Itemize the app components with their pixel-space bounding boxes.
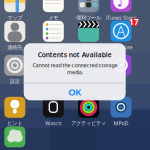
- button[interactable]: 連絡先: [0, 21, 30, 51]
- staticText: アクティビティ: [71, 120, 106, 127]
- button[interactable]: 設定: [0, 55, 30, 85]
- button[interactable]: App Store: [106, 21, 136, 51]
- button[interactable]: メモ: [38, 0, 68, 21]
- button[interactable]: OK: [24, 83, 126, 100]
- staticText: Contents not Available: [38, 50, 112, 59]
- staticText: マップ: [7, 14, 22, 21]
- staticText: App Store: [109, 44, 132, 51]
- button[interactable]: App: [106, 55, 136, 85]
- staticText: メモ: [48, 14, 58, 21]
- staticText: 便利ツール: [76, 14, 101, 21]
- staticText: 17: [129, 17, 139, 27]
- button[interactable]: iTunes Store: [106, 0, 136, 21]
- button[interactable]: ヒント: [0, 97, 30, 127]
- button[interactable]: Watch: [38, 97, 68, 127]
- button[interactable]: アクティビティ: [71, 97, 106, 127]
- button[interactable]: MPoD: [106, 97, 136, 127]
- staticText: ♪: [116, 0, 125, 10]
- staticText: OK: [68, 86, 81, 98]
- button[interactable]: マップ: [0, 0, 30, 21]
- staticText: A: [116, 21, 125, 41]
- button[interactable]: リマインダー: [38, 21, 68, 51]
- staticText: MPoD: [113, 120, 128, 127]
- staticText: Watch: [45, 120, 61, 127]
- staticText: iTunes Store: [106, 14, 136, 21]
- staticText: ヒント: [7, 120, 22, 127]
- staticText: 連絡先: [7, 44, 22, 51]
- staticText: Cannot read the connected storage media.: [32, 62, 117, 76]
- button[interactable]: ビデオ: [74, 21, 104, 51]
- button[interactable]: App: [0, 126, 30, 150]
- staticText: 設定: [10, 78, 20, 85]
- button[interactable]: 便利ツール: [74, 0, 104, 21]
